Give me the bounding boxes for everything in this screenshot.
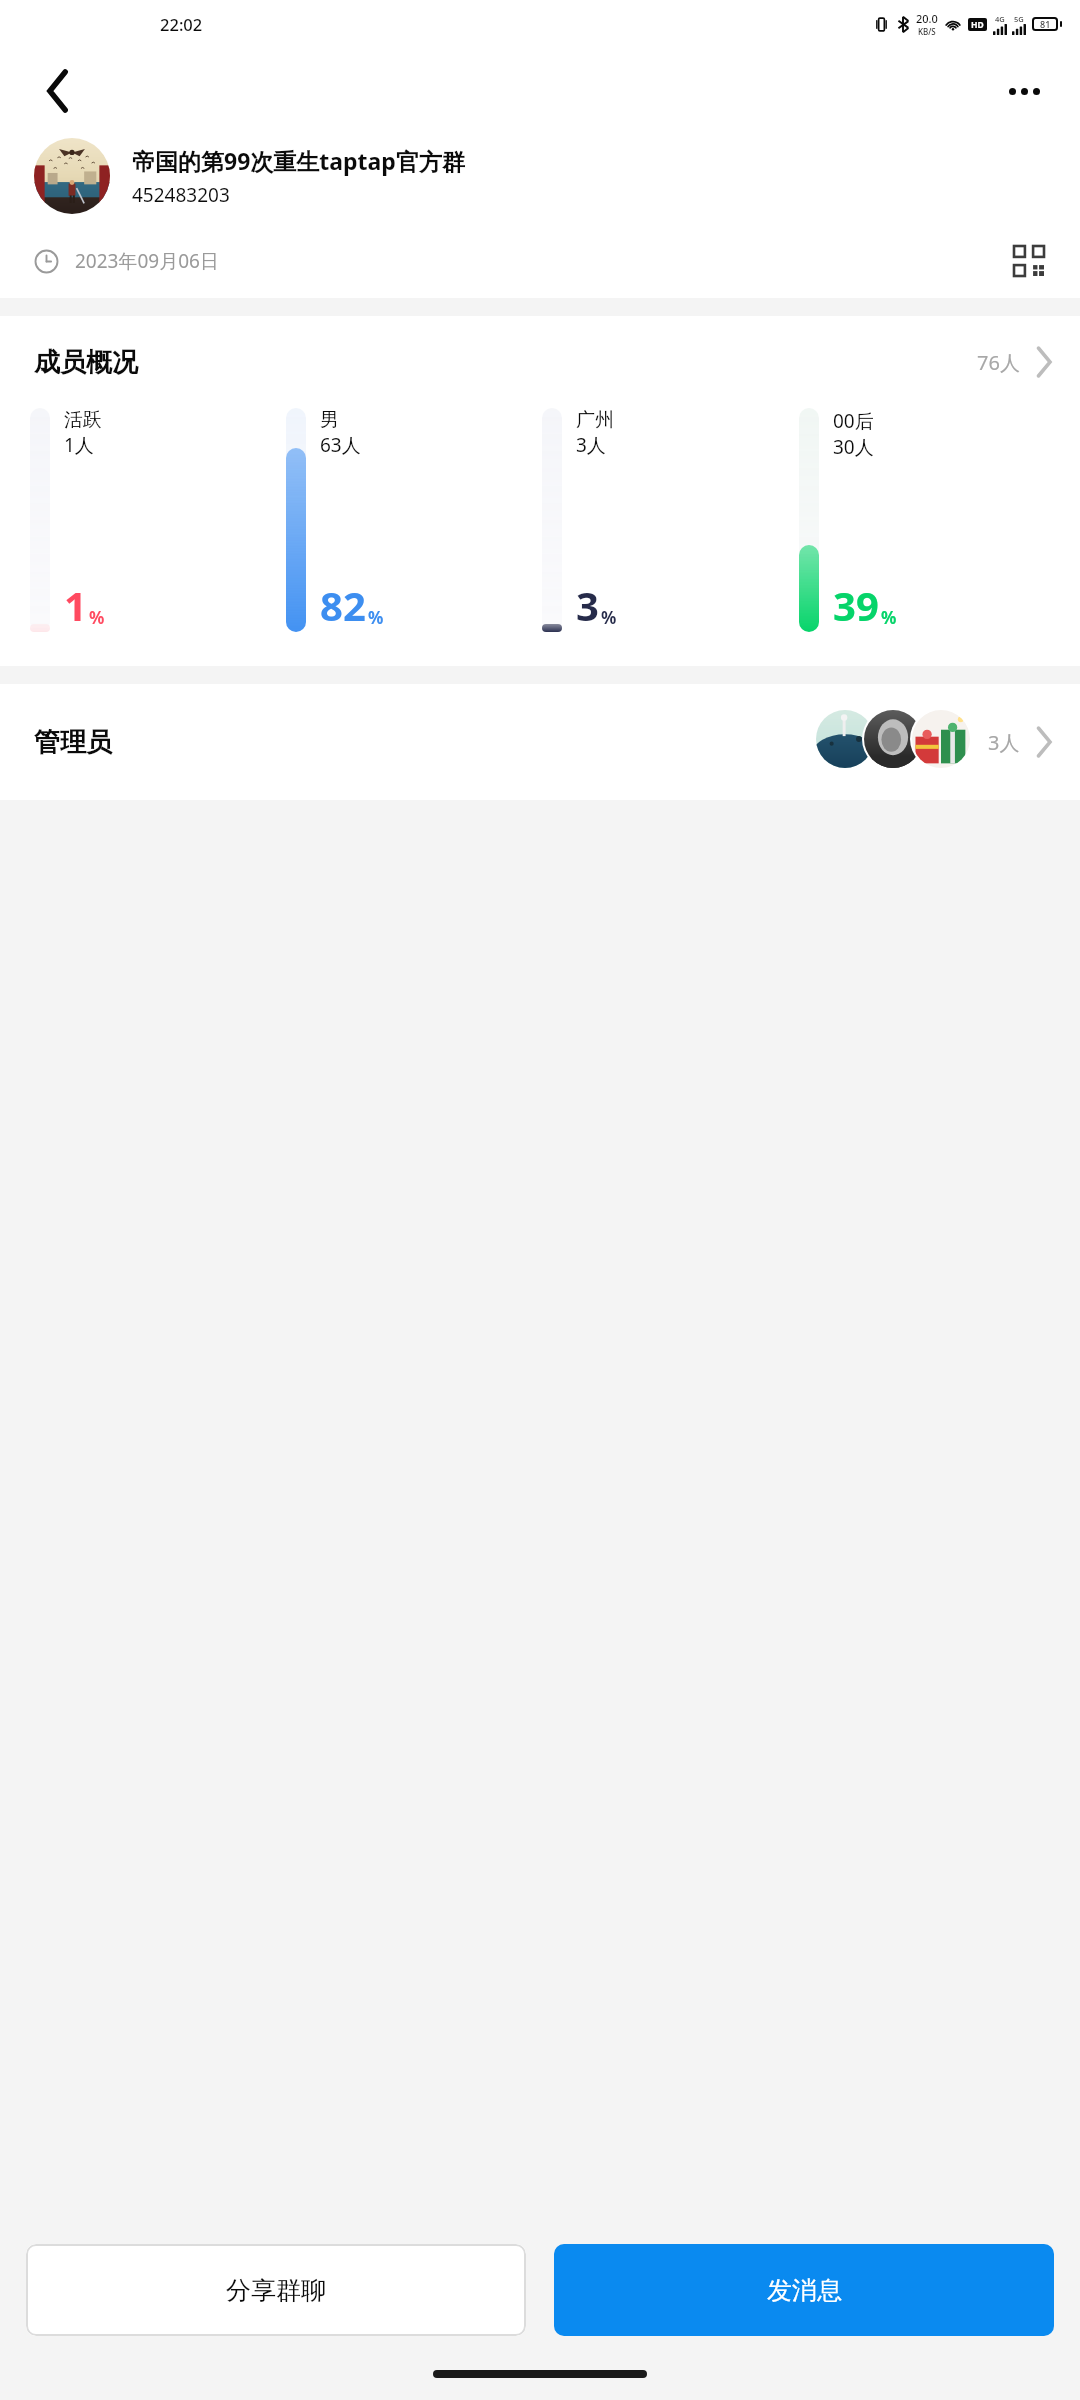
button[interactable]: 管理员	[0, 684, 1080, 800]
staticText: 3人	[576, 432, 606, 458]
staticText: 81	[1040, 18, 1051, 30]
staticText: %	[881, 606, 897, 629]
button[interactable]: 帝国的第99次重生taptap官方群	[0, 134, 1080, 224]
staticText: 76人	[977, 349, 1020, 376]
staticText: %	[368, 606, 384, 629]
staticText: 管理员	[34, 726, 112, 759]
staticText: 63人	[320, 432, 361, 458]
staticText: 22:02	[160, 13, 203, 35]
staticText: 00后	[833, 408, 874, 434]
button[interactable]: More options	[996, 63, 1052, 119]
staticText: 男	[320, 408, 339, 432]
staticText: 4G	[995, 14, 1005, 24]
staticText: 5G	[1014, 14, 1024, 24]
button[interactable]: 分享群聊	[26, 2244, 526, 2336]
staticText: 3	[576, 578, 599, 632]
staticText: %	[89, 606, 105, 629]
staticText: 20.0	[916, 11, 938, 26]
staticText: 39	[833, 578, 879, 632]
staticText: 广州	[576, 408, 614, 432]
staticText: 1	[64, 578, 87, 632]
staticText: 30人	[833, 434, 874, 460]
button[interactable]: QR code	[1006, 238, 1052, 284]
staticText: 3人	[988, 729, 1020, 756]
staticText: 452483203	[132, 182, 230, 208]
staticText: 分享群聊	[226, 2275, 326, 2306]
staticText: 1人	[64, 432, 94, 458]
button[interactable]: 成员概况	[0, 316, 1080, 408]
staticText: HD	[971, 19, 984, 31]
staticText: 帝国的第99次重生taptap官方群	[132, 145, 465, 176]
staticText: 成员概况	[34, 346, 138, 379]
staticText: 活跃	[64, 408, 102, 432]
staticText: 2023年09月06日	[75, 248, 219, 274]
staticText: %	[601, 606, 617, 629]
button[interactable]: Back	[30, 63, 86, 119]
button[interactable]: 2023年09月06日	[0, 224, 1080, 298]
button[interactable]: 发消息	[554, 2244, 1054, 2336]
staticText: 发消息	[767, 2275, 842, 2306]
staticText: 82	[320, 578, 366, 632]
staticText: KB/S	[918, 26, 936, 37]
